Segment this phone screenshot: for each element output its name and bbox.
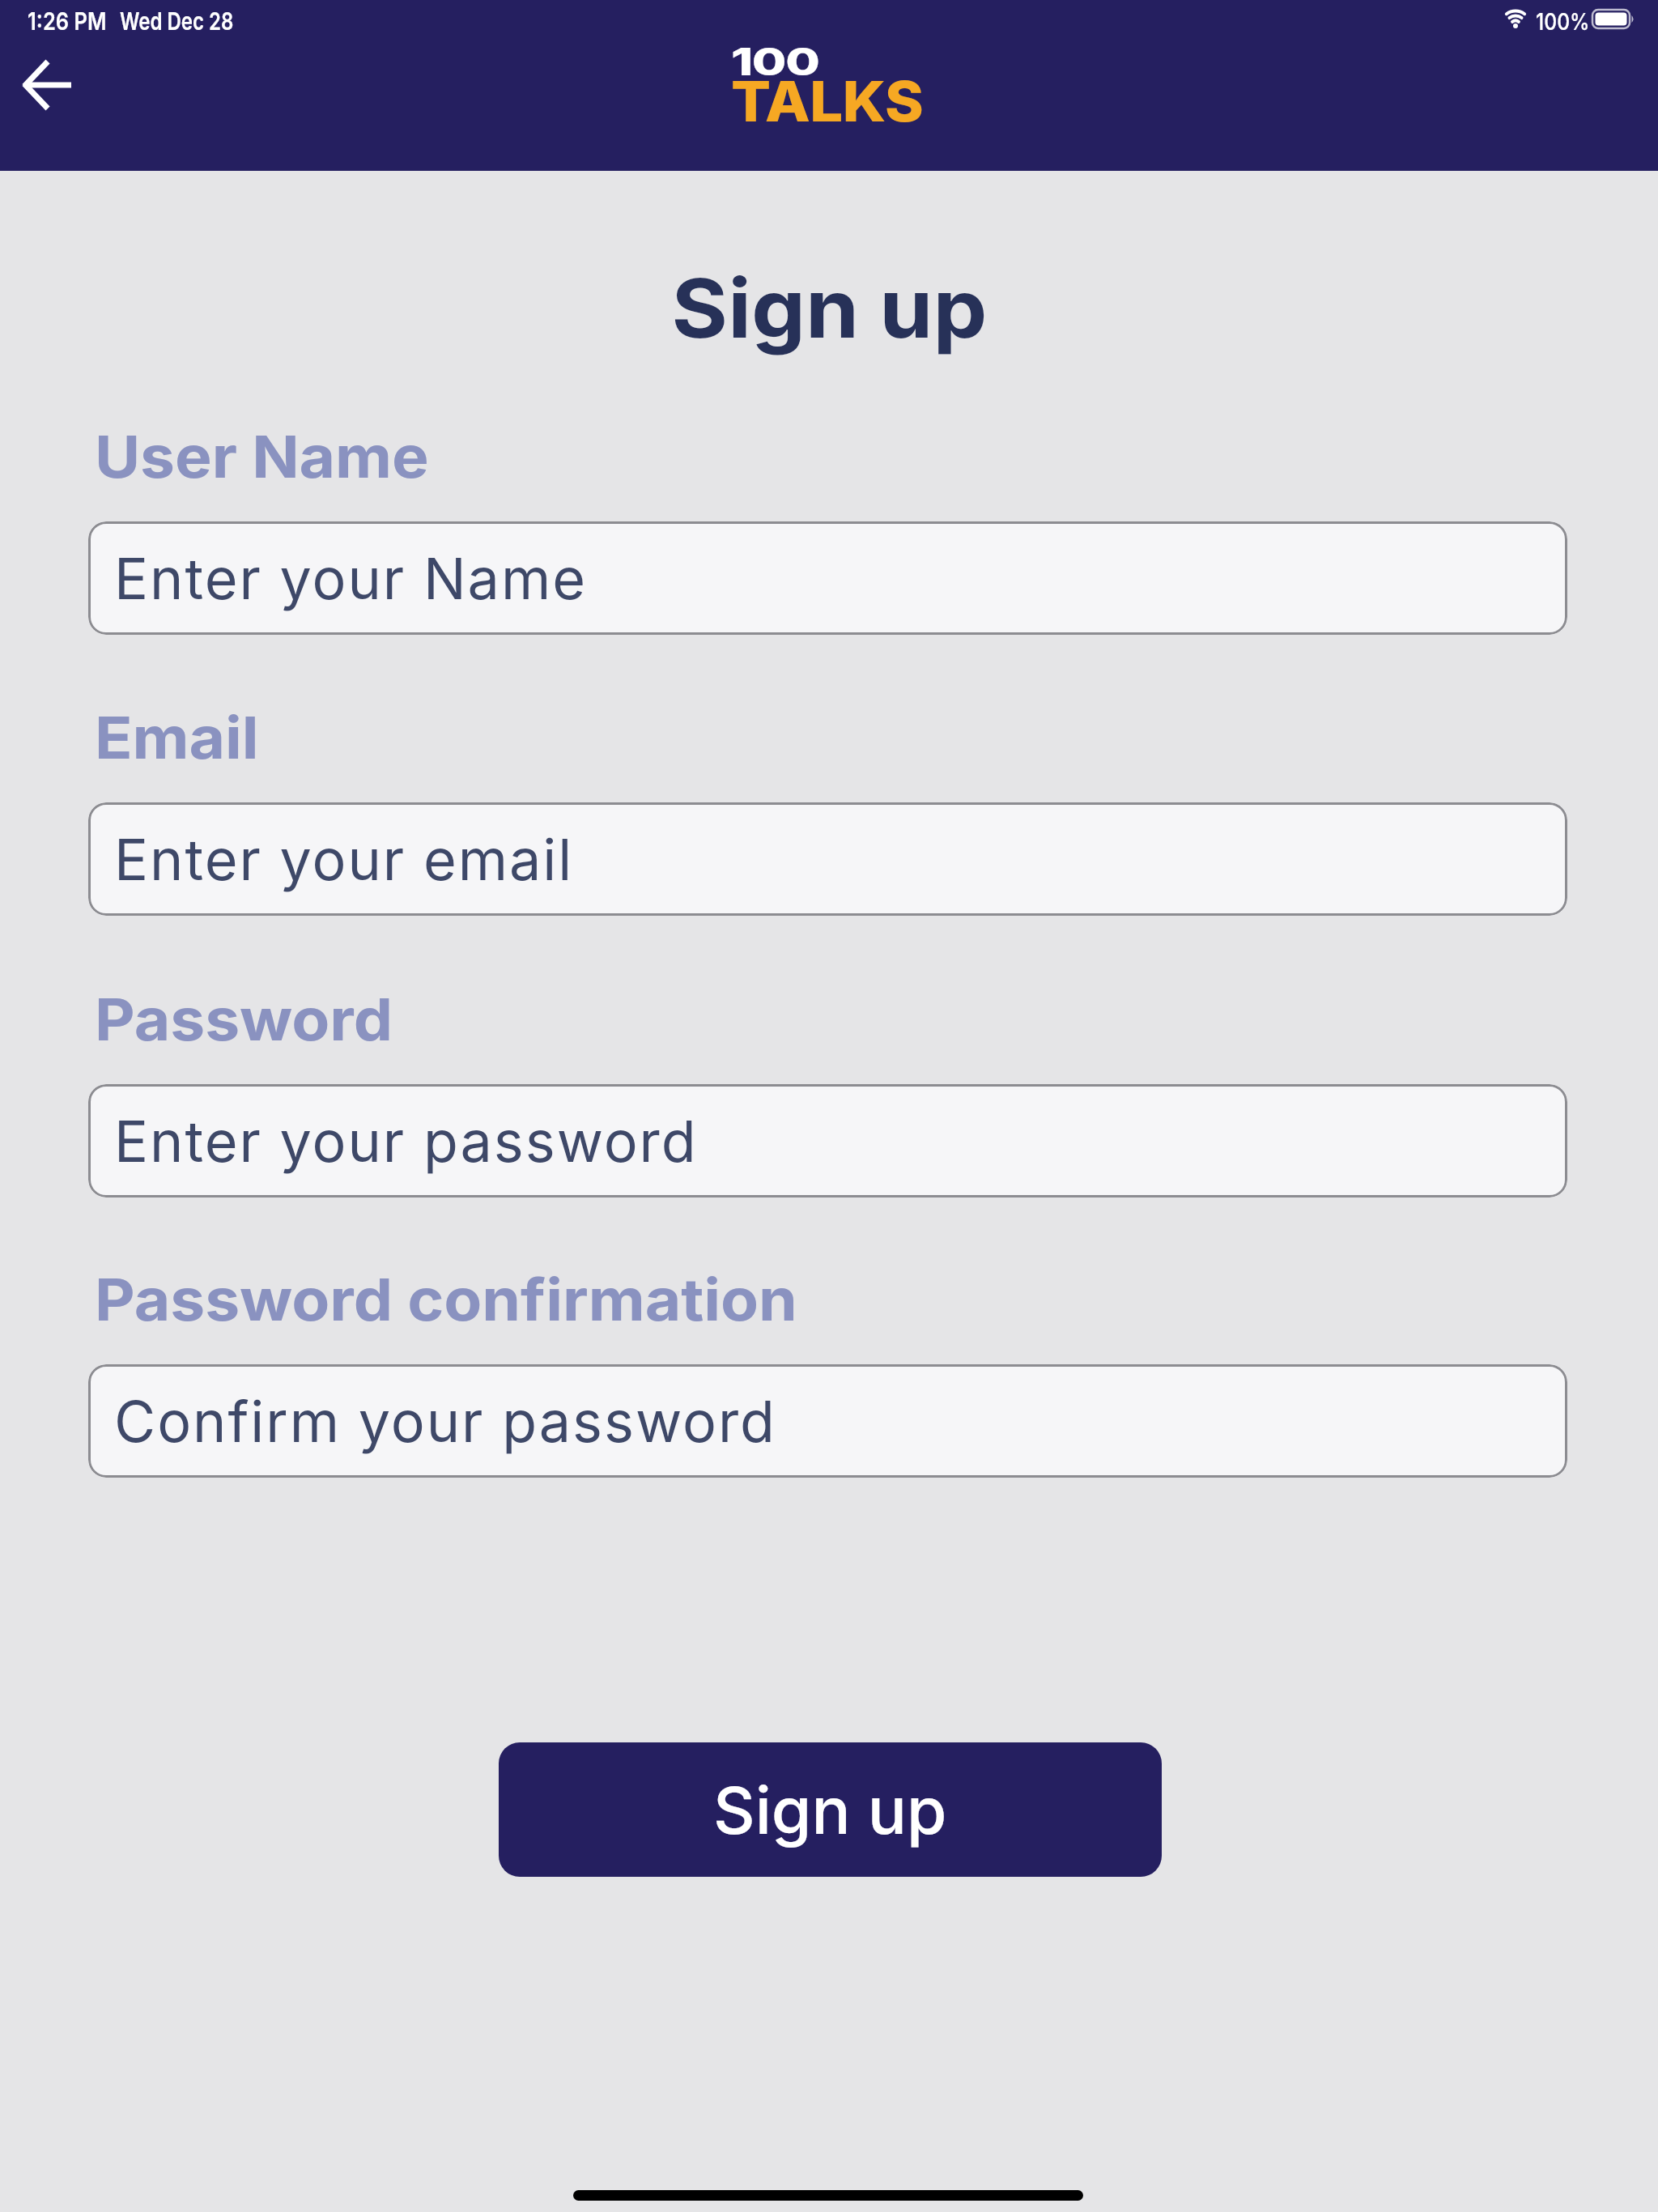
staticText: Sign up [672,259,987,357]
staticText: TALKS [731,67,923,134]
button[interactable]: Sign up [499,1742,1162,1877]
staticText: Enter your password [114,1107,698,1176]
staticText: Enter your Name [114,544,588,613]
staticText: Sign up [713,1771,947,1849]
staticText: Confirm your password [114,1387,776,1456]
button[interactable]: Enter your password [88,1084,1567,1197]
staticText: Password confirmation [95,1264,797,1334]
staticText: 100 [731,39,819,84]
button[interactable]: Enter your Name [88,521,1567,635]
staticText: User Name [95,421,429,491]
staticText: Password [95,984,393,1054]
button[interactable] [8,45,89,125]
staticText: 1:26 PM [28,6,107,36]
staticText: Email [95,702,259,772]
staticText: 100% [1536,7,1590,36]
staticText: Wed Dec 28 [120,6,234,36]
staticText: Enter your email [114,825,574,894]
button[interactable]: Confirm your password [88,1364,1567,1478]
button[interactable]: Enter your email [88,802,1567,916]
